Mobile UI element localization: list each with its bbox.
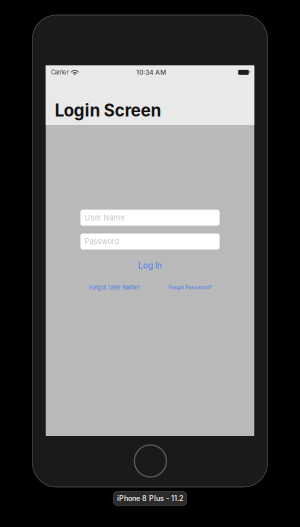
button[interactable]: Log In	[130, 261, 170, 270]
staticText: Forgot User Name?	[89, 284, 140, 291]
button[interactable]: Forgot User Name?	[89, 284, 140, 291]
staticText: Forgot Password?	[168, 284, 212, 291]
button[interactable]: User Name	[80, 210, 220, 226]
staticText: Carrier	[51, 69, 69, 76]
staticText: User Name	[85, 213, 125, 222]
button[interactable]: Forgot Password?	[168, 284, 212, 291]
staticText: Login Screen	[55, 100, 161, 120]
staticText: Password	[85, 237, 120, 246]
staticText: iPhone 8 Plus - 11.2	[117, 494, 183, 503]
button[interactable]: Password	[80, 233, 220, 249]
staticText: Log In	[138, 260, 162, 270]
staticText: 10:34 AM	[136, 68, 166, 76]
